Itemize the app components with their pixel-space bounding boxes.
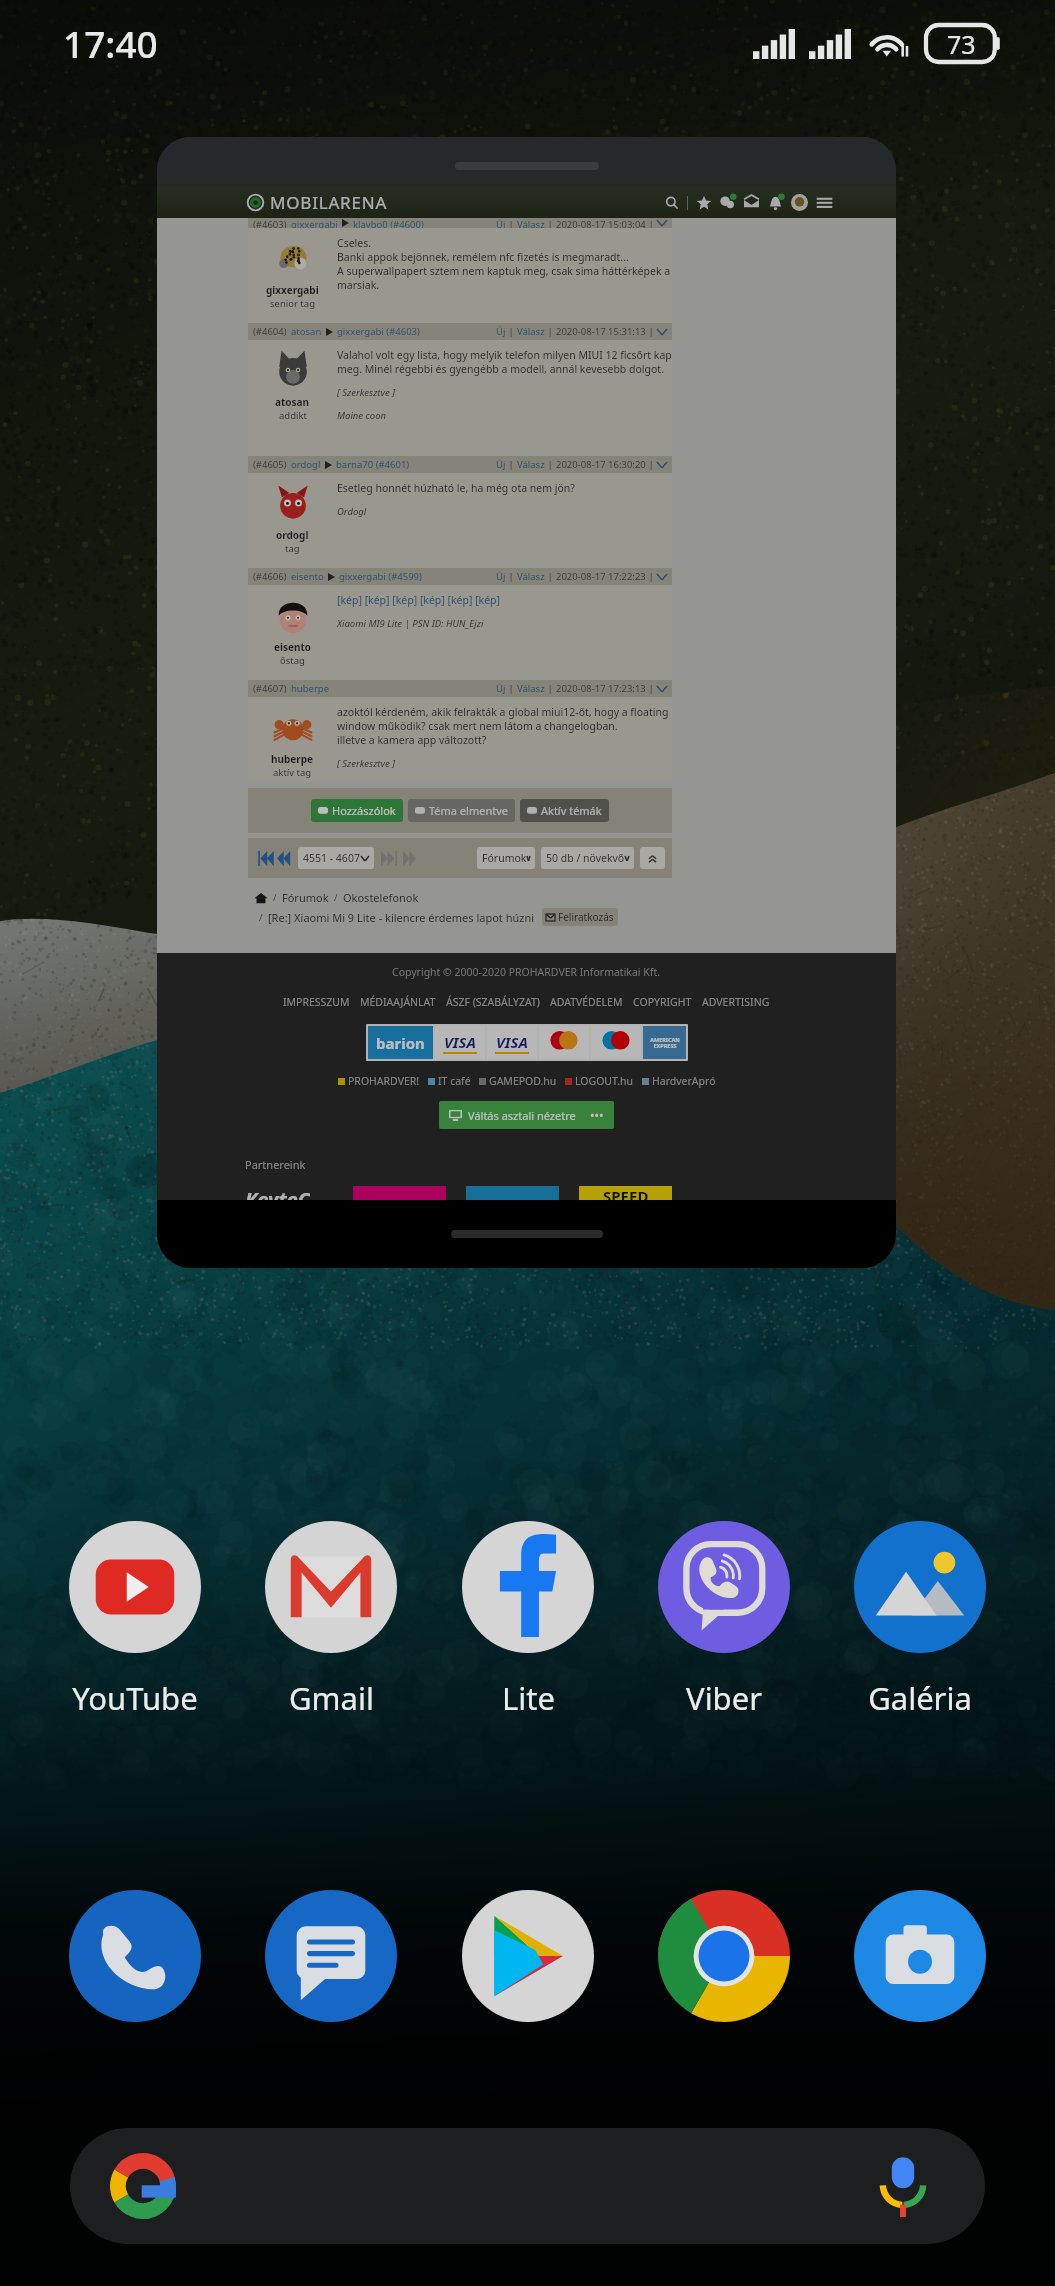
staticText: barna70 (#4601) <box>336 458 410 471</box>
staticText: | <box>646 682 657 695</box>
button[interactable]: Messages <box>265 1890 397 2022</box>
button[interactable]: Next page <box>381 851 417 866</box>
staticText: Új <box>496 570 506 583</box>
staticText: Téma elmentve <box>429 803 508 818</box>
button[interactable]: huberpe <box>248 697 672 782</box>
button[interactable]: Chrome <box>658 1890 790 2022</box>
button[interactable]: Gmail <box>265 1521 397 1719</box>
staticText: (#4605) <box>253 458 287 471</box>
staticText: Maine coon <box>337 409 387 422</box>
staticText: | <box>646 218 657 228</box>
button[interactable]: MÉDIAAJÁNLAT <box>360 995 436 1009</box>
button[interactable]: Play Store <box>462 1890 594 2022</box>
staticText: Válasz <box>517 458 545 471</box>
staticText: marsiak. <box>337 278 380 292</box>
button[interactable]: First page <box>255 851 291 866</box>
button[interactable]: PROHARDVER! <box>348 1074 420 1088</box>
staticText: gixxergabi (#4599) <box>339 570 422 583</box>
button[interactable]: Menu <box>816 194 833 211</box>
staticText: Hozzászólok <box>332 803 396 818</box>
button[interactable]: Galéria <box>854 1521 986 1719</box>
button[interactable]: Notifications <box>767 194 784 211</box>
staticText: Viber <box>686 1677 762 1719</box>
button[interactable]: Search <box>665 196 679 210</box>
staticText: Új <box>496 325 506 338</box>
staticText: | <box>545 325 556 338</box>
staticText: ••• <box>590 1107 604 1123</box>
staticText: Partnereink <box>245 1157 306 1172</box>
button[interactable]: Top <box>640 847 665 869</box>
staticText: VISA <box>444 1032 476 1052</box>
button[interactable]: ÁSZF (SZABÁLYZAT) <box>446 995 540 1009</box>
button[interactable]: HardverApró <box>652 1074 716 1088</box>
button[interactable]: Favorites <box>696 195 712 211</box>
button[interactable]: IMPRESSZUM <box>283 995 350 1009</box>
staticText: Xiaomi MI9 Lite | PSN ID: HUN_Ejzi <box>337 617 484 630</box>
staticText: addikt <box>279 409 307 422</box>
staticText: őstag <box>280 654 305 667</box>
staticText: Galéria <box>868 1677 972 1719</box>
staticText: | <box>506 458 517 471</box>
button[interactable]: Viber <box>658 1521 790 1719</box>
button[interactable]: Fórumok <box>282 890 329 905</box>
button[interactable]: YouTube <box>69 1521 201 1719</box>
staticText: Feliratkozás <box>558 910 614 924</box>
button[interactable]: Fórumok <box>482 847 530 869</box>
button[interactable]: (#4606) <box>248 568 672 585</box>
button[interactable]: ordogl <box>248 473 672 568</box>
staticText: 2020-08-17 17:22:23 <box>556 570 646 583</box>
button[interactable]: Okostelefonok <box>343 890 419 905</box>
staticText: [ Szerkesztve ] <box>337 757 395 770</box>
button[interactable]: Search <box>70 2128 985 2244</box>
staticText: gixxergabi <box>291 218 338 228</box>
staticText: Cseles. <box>337 236 372 250</box>
button[interactable]: ADVERTISING <box>702 995 770 1009</box>
staticText: | <box>646 570 657 583</box>
staticText: | <box>506 570 517 583</box>
button[interactable]: 50 db / növekvő <box>546 847 629 869</box>
staticText: | <box>545 218 556 228</box>
staticText: klaybo0 (#4600) <box>353 218 424 228</box>
button[interactable]: Profile <box>791 194 808 211</box>
button[interactable]: Lite <box>462 1521 594 1719</box>
staticText: ordogl <box>291 458 321 471</box>
button[interactable]: Hozzászólok <box>318 803 396 818</box>
button[interactable]: (#4604) <box>248 323 672 340</box>
button[interactable]: LOGOUT.hu <box>575 1074 634 1088</box>
staticText: (#4604) <box>253 325 287 338</box>
staticText: eisento <box>291 570 324 583</box>
staticText: Fórumok <box>482 851 527 865</box>
button[interactable]: Phone <box>69 1890 201 2022</box>
button[interactable]: ADATVÉDELEM <box>550 995 623 1009</box>
staticText: atosan <box>291 325 322 338</box>
button[interactable]: Váltás asztali nézetre <box>449 1107 604 1123</box>
staticText: | <box>545 682 556 695</box>
button[interactable]: (#4605) <box>248 456 672 473</box>
staticText: KeyteC <box>245 1186 310 1200</box>
button[interactable]: Camera <box>854 1890 986 2022</box>
button[interactable]: eisento <box>248 585 672 680</box>
staticText: / <box>329 891 343 904</box>
button[interactable]: Messages <box>719 194 736 211</box>
button[interactable]: Téma elmentve <box>415 803 508 818</box>
button[interactable]: gixxergabi <box>248 228 672 323</box>
staticText: | <box>646 325 657 338</box>
button[interactable]: 4551 - 4607 <box>303 847 369 869</box>
button[interactable]: atosan <box>248 340 672 456</box>
button[interactable]: Feliratkozás <box>546 910 614 924</box>
button[interactable]: COPYRIGHT <box>633 995 692 1009</box>
button[interactable]: IT café <box>438 1074 471 1088</box>
button[interactable]: Aktív témák <box>527 803 602 818</box>
button[interactable]: (#4603) <box>248 218 672 228</box>
staticText: MOBILARENA <box>270 191 388 214</box>
button[interactable]: GAMEPOD.hu <box>489 1074 557 1088</box>
button[interactable]: MOBILARENA <box>157 137 896 1268</box>
button[interactable]: Mail <box>743 194 760 211</box>
staticText: VISA <box>496 1032 528 1052</box>
staticText: gixxergabi <box>266 283 319 297</box>
staticText: Ordogl <box>337 505 367 518</box>
button[interactable]: (#4607) <box>248 680 672 697</box>
staticText: | <box>545 570 556 583</box>
staticText: 2020-08-17 15:31:13 <box>556 325 646 338</box>
staticText: Valahol volt egy lista, hogy melyik tele… <box>337 348 672 362</box>
